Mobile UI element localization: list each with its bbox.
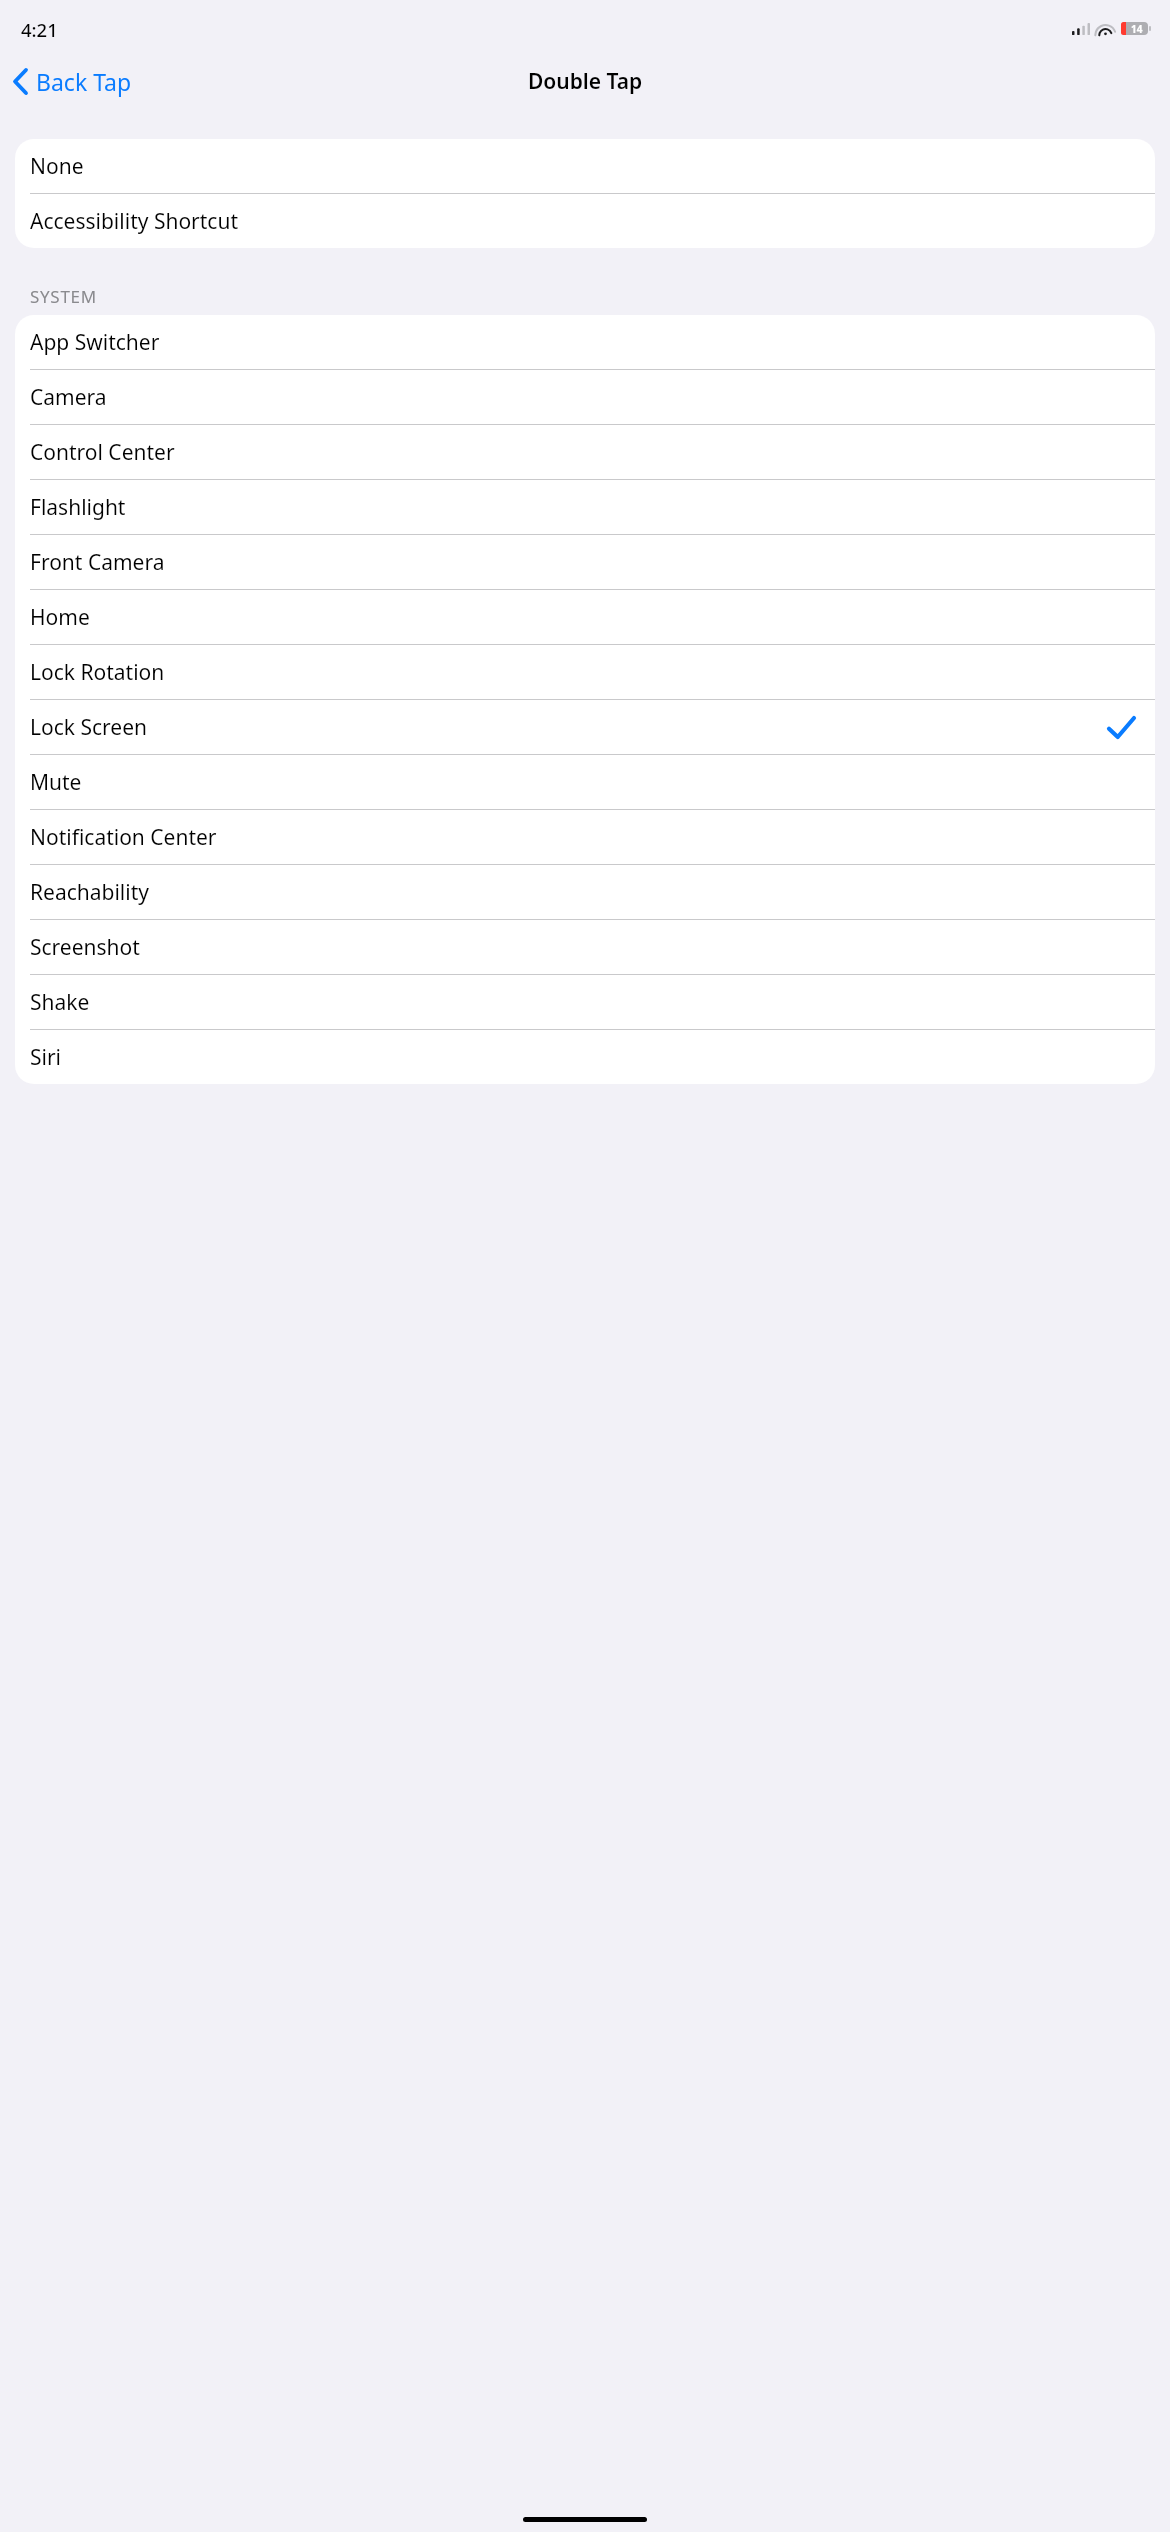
staticText: 14 xyxy=(1131,22,1143,35)
staticText: Screenshot xyxy=(30,933,140,962)
button[interactable]: Notification Center xyxy=(15,810,1155,864)
button[interactable]: Front Camera xyxy=(15,535,1155,589)
button[interactable]: Home xyxy=(15,590,1155,644)
button[interactable]: Control Center xyxy=(15,425,1155,479)
button[interactable]: None xyxy=(15,139,1155,193)
button[interactable]: Screenshot xyxy=(15,920,1155,974)
button[interactable]: Lock Screen xyxy=(15,700,1155,754)
staticText: 4:21 xyxy=(21,17,58,42)
staticText: Front Camera xyxy=(30,548,165,577)
staticText: Notification Center xyxy=(30,823,217,852)
staticText: Shake xyxy=(30,988,90,1017)
staticText: Siri xyxy=(30,1043,62,1072)
staticText: Lock Rotation xyxy=(30,658,165,687)
button[interactable]: App Switcher xyxy=(15,315,1155,369)
staticText: Control Center xyxy=(30,438,175,467)
button[interactable]: Accessibility Shortcut xyxy=(15,194,1155,248)
button[interactable]: Shake xyxy=(15,975,1155,1029)
staticText: Mute xyxy=(30,768,82,797)
staticText: Double Tap xyxy=(528,67,643,96)
button[interactable]: Camera xyxy=(15,370,1155,424)
staticText: Back Tap xyxy=(36,66,132,97)
button[interactable]: Back Tap xyxy=(0,60,142,103)
button[interactable]: Reachability xyxy=(15,865,1155,919)
button[interactable]: Lock Rotation xyxy=(15,645,1155,699)
staticText: SYSTEM xyxy=(30,285,97,308)
other: Selected xyxy=(1109,718,1134,737)
staticText: Reachability xyxy=(30,878,149,907)
button[interactable]: Flashlight xyxy=(15,480,1155,534)
staticText: Lock Screen xyxy=(30,713,147,742)
staticText: None xyxy=(30,152,84,181)
staticText: Home xyxy=(30,603,90,632)
button[interactable]: Mute xyxy=(15,755,1155,809)
staticText: Accessibility Shortcut xyxy=(30,207,238,236)
button[interactable]: Siri xyxy=(15,1030,1155,1084)
staticText: Flashlight xyxy=(30,493,126,522)
staticText: Camera xyxy=(30,383,107,412)
staticText: App Switcher xyxy=(30,328,160,357)
